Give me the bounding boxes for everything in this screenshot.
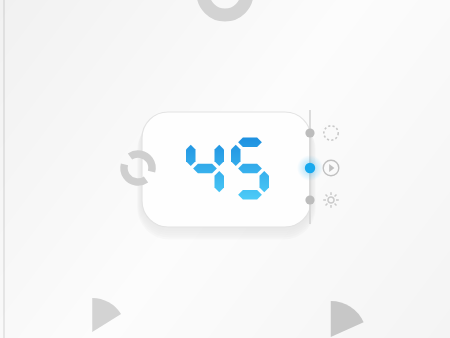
button[interactable]: Timer 45 bbox=[142, 112, 311, 227]
button[interactable]: Play mode bbox=[296, 154, 346, 182]
button[interactable]: Standby mode bbox=[296, 119, 346, 147]
button[interactable]: Brightness mode bbox=[296, 186, 346, 214]
button[interactable]: Reset timer bbox=[122, 152, 154, 184]
